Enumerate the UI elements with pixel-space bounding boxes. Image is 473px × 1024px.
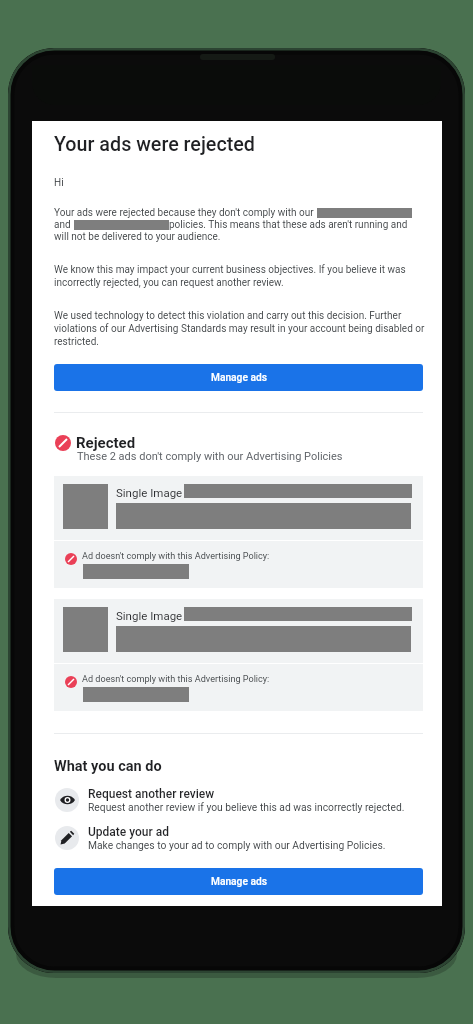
other: Request another review (55, 788, 79, 812)
staticText: These 2 ads don't comply with our Advert… (77, 450, 343, 463)
staticText: policies. This means that these ads aren… (169, 219, 408, 231)
staticText: Your ads were rejected because they don'… (54, 207, 317, 219)
staticText: Manage ads (211, 876, 267, 888)
button[interactable]: Single Image (54, 599, 423, 711)
staticText: Update your ad (88, 825, 170, 839)
button[interactable]: Manage ads (54, 364, 423, 391)
staticText: We know this may impact your current bus… (54, 264, 426, 289)
button[interactable]: Update your ad (54, 826, 423, 850)
staticText: Make changes to your ad to comply with o… (88, 839, 386, 851)
button[interactable]: Request another review (54, 788, 423, 812)
staticText: Manage ads (211, 372, 267, 384)
staticText: will not be delivered to your audience. (54, 231, 221, 243)
staticText: Single Image (116, 486, 183, 499)
other: Update your ad (55, 826, 79, 850)
staticText: Hi (54, 177, 64, 189)
staticText: Ad doesn't comply with this Advertising … (82, 551, 270, 562)
staticText: We used technology to detect this violat… (54, 310, 426, 348)
button[interactable]: Manage ads (54, 868, 423, 895)
staticText: Ad doesn't comply with this Advertising … (82, 674, 270, 685)
staticText: Request another review if you believe th… (88, 801, 405, 813)
staticText: and (54, 219, 74, 231)
staticText: What you can do (54, 758, 162, 775)
button[interactable]: Single Image (54, 476, 423, 588)
staticText: Your ads were rejected (54, 133, 255, 156)
staticText: Request another review (88, 787, 215, 801)
staticText: Single Image (116, 609, 183, 622)
staticText: Rejected (76, 434, 136, 452)
